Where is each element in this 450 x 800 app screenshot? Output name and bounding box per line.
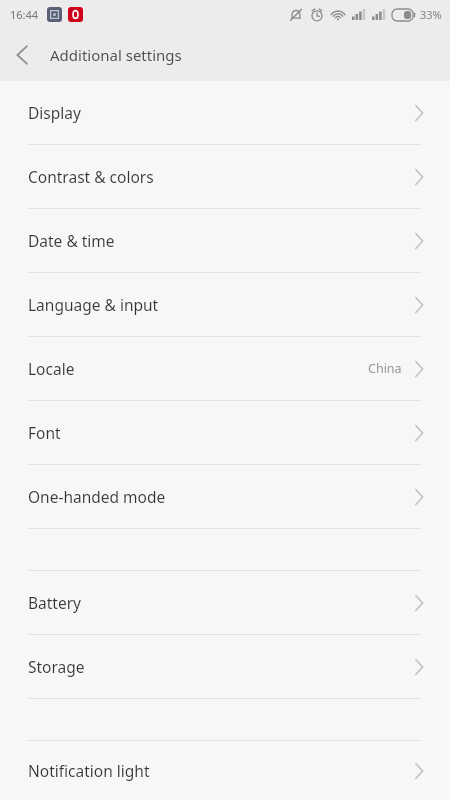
- button[interactable]: Display: [0, 81, 450, 144]
- button[interactable]: One-handed mode: [0, 465, 450, 528]
- staticText: Locale: [28, 358, 75, 379]
- button[interactable]: Contrast & colors: [0, 145, 450, 208]
- staticText: China: [368, 360, 402, 377]
- staticText: Date & time: [28, 230, 115, 251]
- button[interactable]: Language & input: [0, 273, 450, 336]
- staticText: Display: [28, 102, 81, 123]
- button[interactable]: Back: [0, 33, 44, 77]
- staticText: One-handed mode: [28, 486, 166, 507]
- button[interactable]: Locale: [0, 337, 450, 400]
- staticText: Contrast & colors: [28, 166, 154, 187]
- staticText: Storage: [28, 656, 85, 677]
- button[interactable]: Storage: [0, 635, 450, 698]
- staticText: Battery: [28, 592, 82, 613]
- staticText: 33%: [420, 7, 442, 22]
- button[interactable]: Battery: [0, 571, 450, 634]
- staticText: Notification light: [28, 760, 150, 781]
- button[interactable]: Notification light: [0, 741, 450, 800]
- button[interactable]: Font: [0, 401, 450, 464]
- staticText: Language & input: [28, 294, 159, 315]
- staticText: 16:44: [10, 7, 39, 22]
- button[interactable]: Date & time: [0, 209, 450, 272]
- staticText: Font: [28, 422, 61, 443]
- staticText: Additional settings: [50, 45, 182, 65]
